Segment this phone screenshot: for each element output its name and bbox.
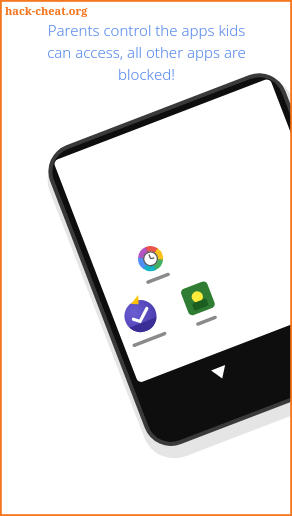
staticText: Parents control the apps kids can access… [47,20,246,85]
staticText: hack-cheat.org [5,3,88,18]
